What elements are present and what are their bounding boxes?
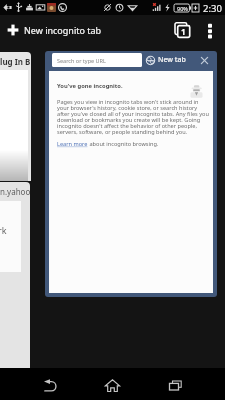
button[interactable]: Close tab (197, 53, 211, 67)
button[interactable]: Recent apps (155, 368, 195, 400)
button[interactable]: n.yahoo (0, 182, 30, 368)
staticText: New incognito tab (24, 24, 102, 36)
button[interactable]: More options (198, 15, 221, 44)
button[interactable]: Learn more (57, 140, 88, 148)
staticText: lug In B: (0, 56, 31, 67)
staticText: 2:30 (203, 2, 222, 15)
button[interactable]: Tabs (169, 15, 195, 44)
staticText: rk (0, 224, 7, 236)
staticText: Search or type URL (57, 57, 106, 64)
staticText: You've gone incognito. (57, 82, 123, 90)
staticText: n.yahoo (0, 186, 30, 197)
button[interactable]: Home (92, 368, 132, 400)
button[interactable]: New incognito tab (0, 15, 112, 44)
button[interactable]: New tab (144, 53, 186, 67)
staticText: about incognito browsing. (88, 140, 159, 148)
button[interactable]: Back (29, 368, 71, 400)
staticText: New tab (158, 55, 186, 65)
staticText: Pages you view in incognito tabs won't s… (57, 98, 209, 136)
staticText: 1 (181, 26, 186, 37)
staticText: 90% (177, 5, 188, 12)
button[interactable]: Search or type URL (52, 53, 142, 67)
button[interactable]: lug In B: (0, 52, 31, 181)
